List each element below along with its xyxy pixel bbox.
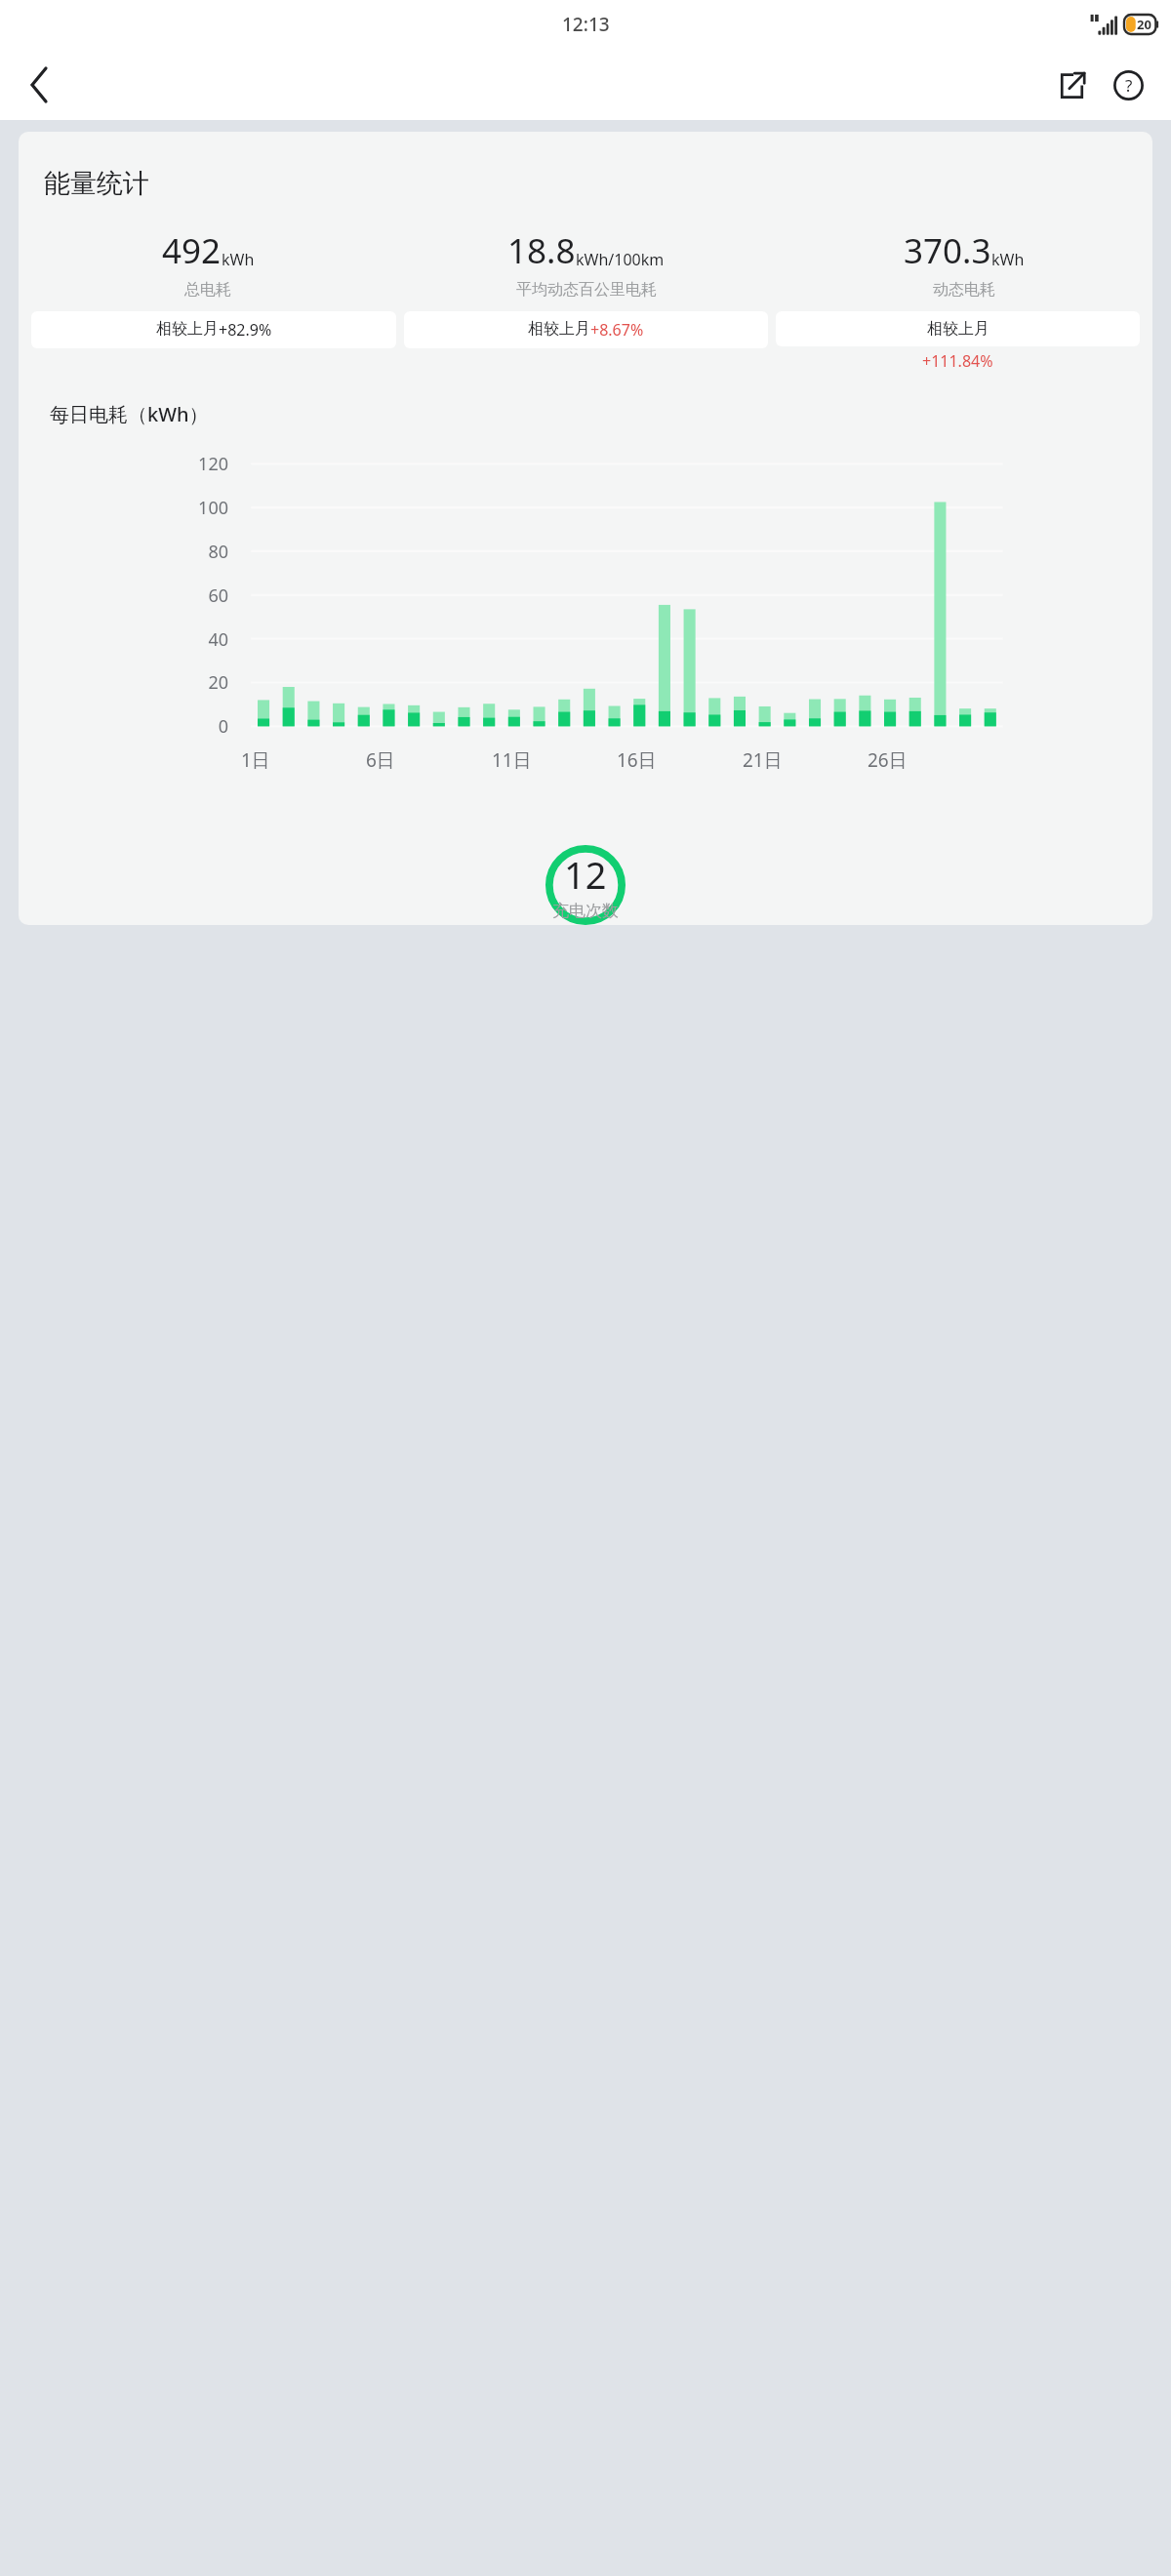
staticText: kWh: [991, 249, 1025, 270]
staticText: 100: [19, 496, 228, 520]
staticText: kWh: [222, 249, 255, 270]
staticText: kWh/100km: [576, 249, 665, 270]
staticText: 充电次数: [552, 901, 619, 921]
staticText: 平均动态百公里电耗: [516, 280, 657, 300]
staticText: 6日: [366, 747, 395, 773]
button[interactable]: Back: [14, 59, 66, 111]
staticText: 18.8: [507, 227, 576, 274]
staticText: 相较上月: [156, 319, 219, 339]
staticText: 16日: [617, 747, 657, 773]
staticText: +82.9%: [219, 319, 272, 341]
staticText: 总电耗: [184, 280, 231, 300]
staticText: 动态电耗: [933, 280, 995, 300]
button[interactable]: 相较上月: [776, 311, 1140, 346]
staticText: 20: [1137, 16, 1151, 33]
staticText: 能量统计: [44, 167, 149, 200]
staticText: 20: [19, 670, 228, 695]
staticText: 相较上月: [528, 319, 590, 339]
staticText: 12:13: [562, 12, 610, 37]
staticText: 1日: [241, 747, 270, 773]
staticText: 120: [19, 452, 228, 476]
staticText: 相较上月: [927, 319, 989, 339]
staticText: 12: [564, 849, 607, 900]
staticText: 370.3: [904, 227, 991, 274]
button[interactable]: 相较上月: [404, 311, 768, 348]
staticText: +8.67%: [590, 319, 644, 341]
staticText: +111.84%: [922, 350, 993, 372]
staticText: ?: [1125, 74, 1133, 97]
button[interactable]: Help: [1103, 60, 1153, 110]
staticText: 80: [19, 540, 228, 564]
staticText: 492: [162, 227, 222, 274]
staticText: 21日: [743, 747, 783, 773]
staticText: 26日: [868, 747, 908, 773]
staticText: 11日: [492, 747, 532, 773]
staticText: 0: [19, 714, 228, 739]
staticText: 40: [19, 627, 228, 652]
staticText: 每日电耗（kWh）: [50, 401, 209, 427]
staticText: 60: [19, 584, 228, 608]
button[interactable]: Share: [1046, 60, 1097, 110]
button[interactable]: 相较上月: [31, 311, 396, 348]
